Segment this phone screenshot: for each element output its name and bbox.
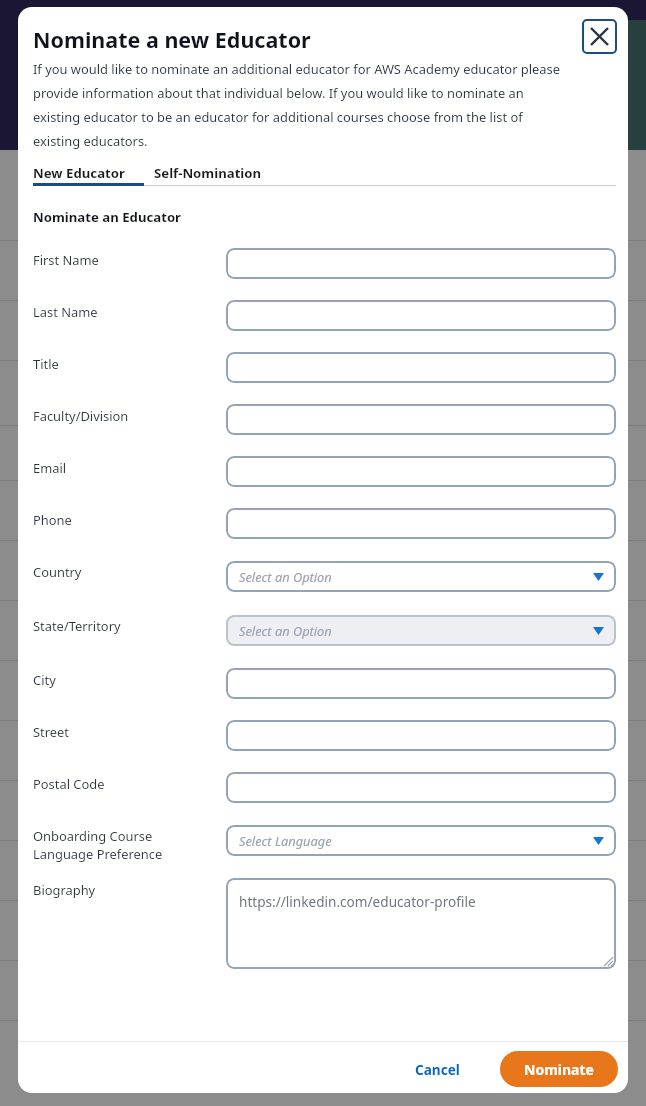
staticText: Country — [33, 563, 82, 581]
button[interactable] — [226, 508, 616, 539]
button[interactable]: Select an Option — [226, 561, 616, 592]
staticText: Email — [33, 459, 67, 477]
button[interactable]: Close — [582, 19, 617, 54]
staticText: Select an Option — [239, 622, 332, 639]
button[interactable] — [226, 720, 616, 751]
staticText: Postal Code — [33, 775, 105, 793]
button[interactable]: Select Language — [226, 825, 616, 856]
staticText: Last Name — [33, 303, 98, 321]
button[interactable]: Select an Option — [226, 615, 616, 646]
staticText: First Name — [33, 251, 99, 269]
button[interactable] — [226, 456, 616, 487]
staticText: Title — [33, 355, 59, 373]
staticText: New Educator — [33, 164, 125, 182]
button[interactable] — [226, 352, 616, 383]
staticText: Nominate a new Educator — [33, 25, 311, 54]
staticText: State/Territory — [33, 617, 121, 635]
staticText: Select an Option — [239, 568, 332, 585]
button[interactable]: Cancel — [404, 1053, 470, 1085]
button[interactable]: New Educator — [33, 158, 125, 188]
staticText: Cancel — [415, 1060, 460, 1079]
staticText: Select Language — [239, 832, 332, 849]
staticText: Biography — [33, 881, 96, 899]
button[interactable]: https://linkedin.com/educator-profile — [226, 878, 616, 969]
button[interactable] — [226, 300, 616, 331]
button[interactable] — [226, 772, 616, 803]
button[interactable] — [226, 404, 616, 435]
staticText: Street — [33, 723, 69, 741]
staticText: Language Preference — [33, 845, 163, 863]
staticText: Phone — [33, 511, 72, 529]
staticText: City — [33, 671, 56, 689]
staticText: Nominate — [524, 1060, 594, 1079]
staticText: Onboarding Course — [33, 827, 153, 845]
staticText: Nominate an Educator — [33, 208, 182, 226]
button[interactable] — [226, 248, 616, 279]
staticText: Faculty/Division — [33, 407, 129, 425]
staticText: https://linkedin.com/educator-profile — [239, 892, 476, 911]
staticText: Self-Nomination — [154, 164, 262, 182]
staticText: If you would like to nominate an additio… — [33, 60, 573, 150]
button[interactable]: Nominate — [500, 1051, 618, 1087]
button[interactable] — [226, 668, 616, 699]
button[interactable]: Self-Nomination — [154, 158, 262, 188]
